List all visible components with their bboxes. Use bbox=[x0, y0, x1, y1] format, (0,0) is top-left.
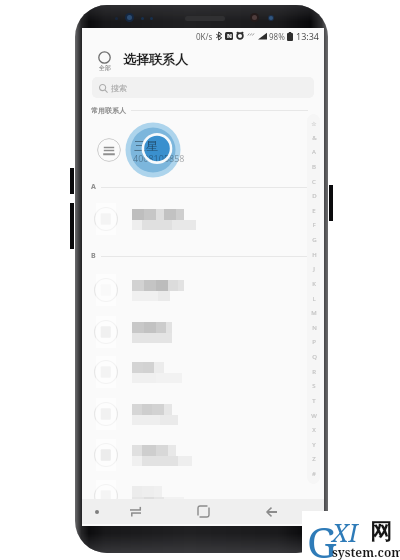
button[interactable]: More bbox=[97, 138, 121, 162]
staticText: W bbox=[311, 412, 317, 420]
staticText: N bbox=[227, 32, 232, 40]
staticText: A bbox=[91, 182, 96, 192]
staticText: J bbox=[313, 265, 315, 273]
staticText: G bbox=[307, 513, 337, 560]
button[interactable] bbox=[82, 477, 324, 515]
staticText: M bbox=[311, 309, 317, 317]
button[interactable] bbox=[82, 313, 324, 351]
button[interactable]: Indicator bbox=[85, 499, 109, 524]
staticText: 0K/s bbox=[196, 31, 213, 42]
button[interactable] bbox=[82, 271, 324, 309]
button[interactable] bbox=[82, 353, 324, 391]
button[interactable]: Recents bbox=[123, 499, 148, 524]
staticText: 网 bbox=[370, 518, 392, 546]
staticText: system.com bbox=[332, 544, 400, 560]
staticText: B bbox=[312, 163, 316, 171]
staticText: Z bbox=[312, 455, 316, 463]
staticText: 13:34 bbox=[296, 30, 320, 42]
staticText: R bbox=[312, 368, 316, 376]
staticText: # bbox=[312, 470, 316, 478]
staticText: 常用联系人 bbox=[91, 106, 126, 115]
button[interactable]: 全部 bbox=[95, 50, 114, 73]
staticText: Y bbox=[312, 441, 316, 449]
button[interactable] bbox=[82, 200, 324, 238]
button[interactable]: 三星 bbox=[120, 116, 190, 180]
staticText: F bbox=[312, 221, 316, 229]
staticText: B bbox=[91, 251, 96, 261]
button[interactable]: Back bbox=[259, 499, 284, 524]
button[interactable]: 搜索 bbox=[92, 77, 314, 98]
staticText: C bbox=[312, 178, 316, 186]
staticText: S bbox=[312, 382, 316, 390]
staticText: T bbox=[312, 397, 316, 405]
staticText: N bbox=[312, 324, 317, 332]
button[interactable]: Home bbox=[191, 499, 216, 524]
staticText: K bbox=[312, 280, 316, 288]
staticText: E bbox=[312, 207, 316, 215]
staticText: ☆ bbox=[311, 120, 317, 127]
staticText: X bbox=[312, 426, 316, 434]
staticText: 三星 bbox=[134, 138, 158, 153]
button[interactable] bbox=[82, 395, 324, 433]
staticText: 选择联系人 bbox=[123, 51, 188, 67]
staticText: 搜索 bbox=[111, 83, 127, 93]
staticText: D bbox=[312, 192, 317, 200]
staticText: G bbox=[312, 236, 317, 244]
button[interactable] bbox=[82, 436, 324, 474]
staticText: 98% bbox=[269, 31, 285, 42]
staticText: L bbox=[312, 295, 316, 303]
button[interactable]: Alphabet index bbox=[307, 114, 320, 484]
staticText: XI bbox=[332, 515, 358, 549]
staticText: & bbox=[312, 134, 317, 142]
staticText: 全部 bbox=[99, 64, 111, 72]
staticText: 4008105858 bbox=[133, 152, 185, 164]
staticText: Q bbox=[312, 353, 317, 361]
staticText: H bbox=[312, 251, 317, 259]
staticText: A bbox=[312, 148, 316, 156]
staticText: P bbox=[312, 338, 316, 346]
